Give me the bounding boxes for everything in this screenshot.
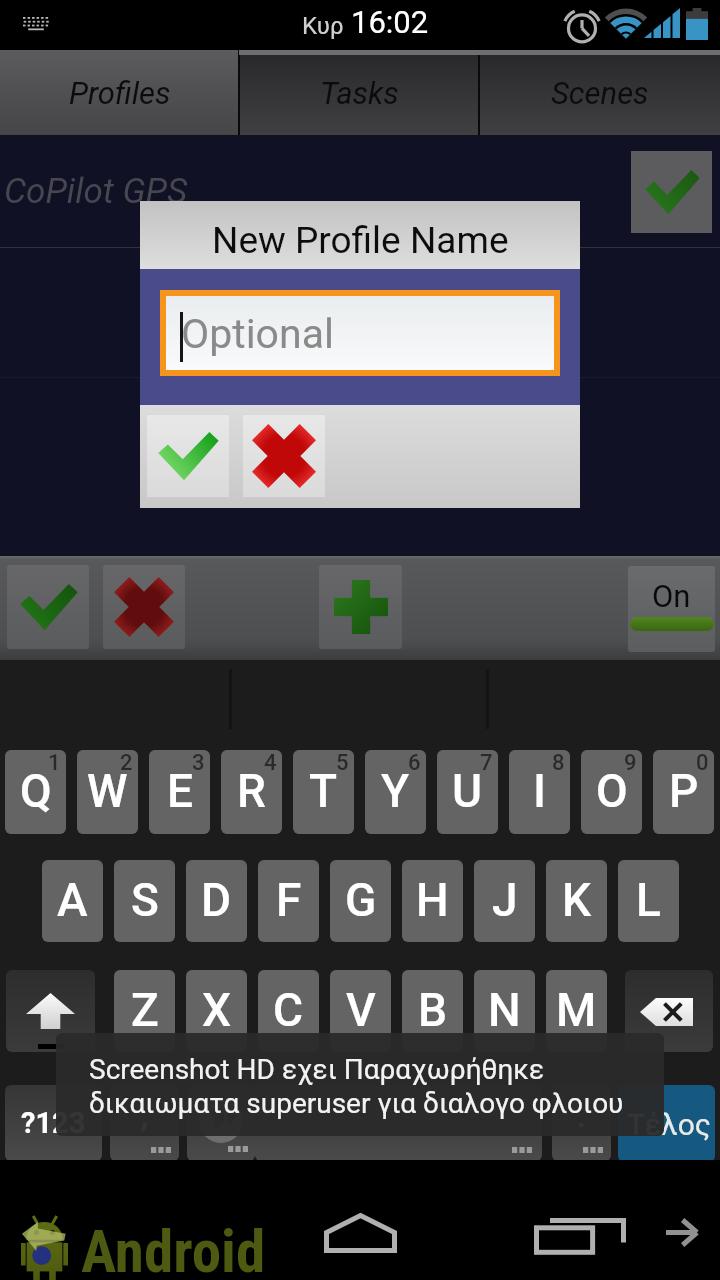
staticText: QWERTY — [340, 1106, 458, 1141]
button[interactable]: G — [330, 860, 391, 942]
button[interactable]: , — [110, 1085, 179, 1161]
staticText: , — [141, 1095, 148, 1135]
staticText: New Profile Name — [212, 219, 509, 262]
staticText: W — [87, 764, 128, 818]
button[interactable]: B — [402, 970, 463, 1052]
staticText: 5 — [336, 750, 349, 776]
staticText: M — [556, 983, 597, 1037]
staticText: 6 — [408, 750, 421, 776]
staticText: V — [346, 983, 376, 1037]
button[interactable]: Recent apps — [510, 1193, 630, 1251]
staticText: L — [636, 873, 661, 927]
staticText: 9 — [624, 750, 637, 776]
staticText: Τέλος — [627, 1107, 711, 1142]
button[interactable]: Scenes — [479, 50, 720, 135]
button[interactable]: Y — [365, 750, 426, 834]
button[interactable]: Tasks — [239, 50, 479, 135]
button[interactable]: C — [258, 970, 319, 1052]
button[interactable]: Forward — [640, 1193, 720, 1251]
staticText: 7 — [480, 750, 493, 776]
button[interactable]: M — [546, 970, 607, 1052]
button[interactable]: Profiles — [0, 50, 239, 135]
button[interactable]: . — [552, 1085, 611, 1161]
button[interactable]: Backspace — [625, 970, 713, 1052]
staticText: Κυρ — [302, 12, 344, 40]
button[interactable]: S — [114, 860, 175, 942]
button[interactable]: U — [437, 750, 498, 834]
staticText: S — [131, 873, 159, 927]
staticText: U — [452, 764, 483, 818]
button[interactable]: P — [653, 750, 714, 834]
button[interactable]: F — [258, 860, 319, 942]
button[interactable]: Τέλος — [618, 1085, 715, 1162]
staticText: K — [562, 873, 592, 927]
staticText: N — [488, 983, 521, 1037]
button[interactable]: Apply — [7, 565, 89, 649]
button[interactable]: N — [474, 970, 535, 1052]
staticText: 3 — [192, 750, 205, 776]
button[interactable]: L — [618, 860, 679, 942]
button[interactable]: Cancel — [243, 415, 325, 497]
staticText: On — [652, 578, 691, 614]
button[interactable]: Change language — [187, 1085, 255, 1161]
button[interactable]: H — [402, 860, 463, 942]
button[interactable]: E — [149, 750, 210, 834]
staticText: Y — [381, 764, 410, 818]
staticText: CoPilot GPS — [4, 171, 188, 212]
button[interactable]: X — [186, 970, 247, 1052]
staticText: Profiles — [69, 75, 171, 111]
staticText: 8 — [552, 750, 565, 776]
staticText: A — [57, 873, 88, 927]
staticText: D — [201, 873, 232, 927]
staticText: Scenes — [551, 75, 649, 111]
staticText: Screenshot HD εχει Παραχωρήθηκε δικαιωμα… — [89, 1053, 624, 1120]
staticText: B — [418, 983, 448, 1037]
staticText: J — [492, 873, 518, 927]
button[interactable]: Shift — [6, 970, 95, 1052]
staticText: 1 — [48, 750, 61, 776]
staticText: F — [276, 873, 302, 927]
button[interactable]: Space — [255, 1085, 542, 1161]
button[interactable]: T — [293, 750, 354, 834]
staticText: T — [309, 764, 338, 818]
button[interactable]: K — [546, 860, 607, 942]
button[interactable]: J — [474, 860, 535, 942]
staticText: O — [596, 764, 628, 818]
staticText: Q — [20, 764, 52, 818]
button[interactable]: Enable profile — [631, 151, 712, 233]
button[interactable]: V — [330, 970, 391, 1052]
button[interactable]: On — [628, 566, 715, 652]
staticText: 0 — [696, 750, 709, 776]
button[interactable]: O — [581, 750, 642, 834]
button[interactable]: Add profile — [319, 565, 402, 649]
staticText: C — [273, 983, 304, 1037]
staticText: X — [202, 983, 232, 1037]
staticText: ?123 — [21, 1106, 86, 1140]
staticText: Tasks — [320, 75, 399, 111]
button[interactable]: Optional — [160, 290, 560, 376]
button[interactable]: ?123 — [5, 1085, 102, 1161]
staticText: E — [167, 764, 193, 818]
button[interactable]: A — [42, 860, 103, 942]
staticText: R — [237, 764, 266, 818]
button[interactable]: OK — [147, 415, 229, 497]
staticText: I — [533, 764, 547, 818]
button[interactable]: R — [221, 750, 282, 834]
button[interactable]: Cancel — [103, 565, 185, 649]
button[interactable]: Q — [5, 750, 66, 834]
staticText: Android — [81, 1217, 266, 1280]
staticText: 2 — [120, 750, 133, 776]
staticText: G — [345, 873, 377, 927]
button[interactable]: I — [509, 750, 570, 834]
staticText: 16:02 — [351, 4, 429, 40]
button[interactable]: Z — [114, 970, 175, 1052]
button[interactable]: W — [77, 750, 138, 834]
staticText: Optional — [181, 310, 334, 358]
staticText: . — [577, 1095, 586, 1135]
button[interactable]: D — [186, 860, 247, 942]
staticText: 4 — [264, 750, 277, 776]
staticText: Z — [131, 983, 159, 1037]
button[interactable]: Home — [300, 1193, 420, 1251]
staticText: P — [669, 764, 699, 818]
staticText: H — [416, 873, 449, 927]
